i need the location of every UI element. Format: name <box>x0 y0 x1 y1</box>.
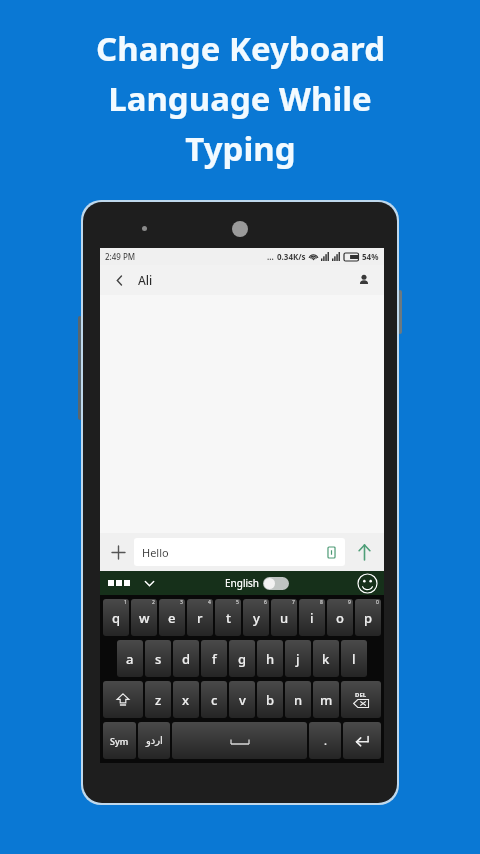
button[interactable]: c <box>201 681 227 718</box>
staticText: ... <box>267 251 274 262</box>
button[interactable]: l <box>341 640 367 677</box>
staticText: 5 <box>236 599 239 606</box>
staticText: 4 <box>208 599 211 606</box>
button[interactable]: Key <box>343 722 381 759</box>
staticText: اردو <box>146 735 163 747</box>
button[interactable]: Key <box>103 681 143 718</box>
staticText: . <box>324 733 327 748</box>
staticText: 9 <box>348 599 351 606</box>
button[interactable]: n <box>285 681 311 718</box>
staticText: y <box>253 609 260 627</box>
staticText: Change Keyboard <box>96 26 385 71</box>
button[interactable]: t <box>215 599 241 636</box>
button[interactable]: b <box>257 681 283 718</box>
staticText: f <box>212 650 217 668</box>
button[interactable]: s <box>145 640 171 677</box>
staticText: DEL <box>355 691 367 699</box>
button[interactable]: i <box>299 599 325 636</box>
staticText: h <box>266 650 275 668</box>
staticText: s <box>155 650 162 668</box>
staticText: 7 <box>292 599 295 606</box>
staticText: 3 <box>180 599 183 606</box>
staticText: 1 <box>124 599 127 606</box>
button[interactable]: u <box>271 599 297 636</box>
staticText: b <box>266 691 275 709</box>
button[interactable]: Attach <box>105 539 131 565</box>
staticText: r <box>197 609 203 627</box>
staticText: English <box>225 576 260 590</box>
staticText: x <box>182 691 190 709</box>
staticText: a <box>126 650 134 668</box>
staticText: 0.34K/s <box>277 251 306 262</box>
button[interactable]: a <box>117 640 143 677</box>
staticText: o <box>336 609 344 627</box>
staticText: Hello <box>142 545 169 560</box>
button[interactable]: f <box>201 640 227 677</box>
button[interactable]: اردو <box>138 722 170 759</box>
staticText: u <box>280 609 289 627</box>
button[interactable]: Hide keyboard <box>140 574 158 592</box>
button[interactable]: q <box>103 599 129 636</box>
staticText: w <box>139 609 150 627</box>
staticText: i <box>310 609 314 627</box>
button[interactable]: Emoji <box>357 573 378 594</box>
staticText: j <box>296 650 300 668</box>
button[interactable]: Key <box>172 722 307 759</box>
button[interactable]: English <box>225 576 289 590</box>
staticText: v <box>239 691 246 709</box>
staticText: Ali <box>138 272 153 288</box>
button[interactable]: Hello <box>134 538 345 566</box>
button[interactable]: o <box>327 599 353 636</box>
staticText: c <box>211 691 218 709</box>
staticText: t <box>226 609 231 627</box>
button[interactable]: x <box>173 681 199 718</box>
button[interactable]: y <box>243 599 269 636</box>
staticText: 6 <box>264 599 267 606</box>
staticText: 8 <box>320 599 323 606</box>
staticText: d <box>182 650 191 668</box>
button[interactable]: Key <box>341 681 381 718</box>
staticText: m <box>320 691 333 709</box>
staticText: e <box>168 609 176 627</box>
button[interactable]: Keyboard menu <box>106 578 132 588</box>
staticText: 0 <box>376 599 379 606</box>
staticText: 54% <box>362 251 379 262</box>
button[interactable]: h <box>257 640 283 677</box>
button[interactable]: e <box>159 599 185 636</box>
button[interactable]: d <box>173 640 199 677</box>
staticText: Typing <box>185 126 296 171</box>
staticText: l <box>352 650 356 668</box>
staticText: q <box>112 609 121 627</box>
staticText: n <box>294 691 303 709</box>
button[interactable]: z <box>145 681 171 718</box>
button[interactable]: . <box>309 722 341 759</box>
staticText: k <box>322 650 330 668</box>
button[interactable]: v <box>229 681 255 718</box>
staticText: 2:49 PM <box>105 251 136 262</box>
button[interactable]: Back <box>108 269 130 291</box>
button[interactable]: m <box>313 681 339 718</box>
button[interactable]: Sym <box>103 722 136 759</box>
button[interactable]: p <box>355 599 381 636</box>
staticText: Language While <box>108 76 372 121</box>
button[interactable]: w <box>131 599 157 636</box>
button[interactable]: r <box>187 599 213 636</box>
staticText: g <box>238 650 247 668</box>
staticText: Sym <box>110 735 129 747</box>
staticText: p <box>364 609 373 627</box>
staticText: z <box>155 691 162 709</box>
button[interactable]: Contact profile <box>352 268 376 292</box>
button[interactable]: Send <box>349 537 379 567</box>
button[interactable]: j <box>285 640 311 677</box>
button[interactable]: g <box>229 640 255 677</box>
button[interactable]: k <box>313 640 339 677</box>
staticText: 2 <box>152 599 155 606</box>
